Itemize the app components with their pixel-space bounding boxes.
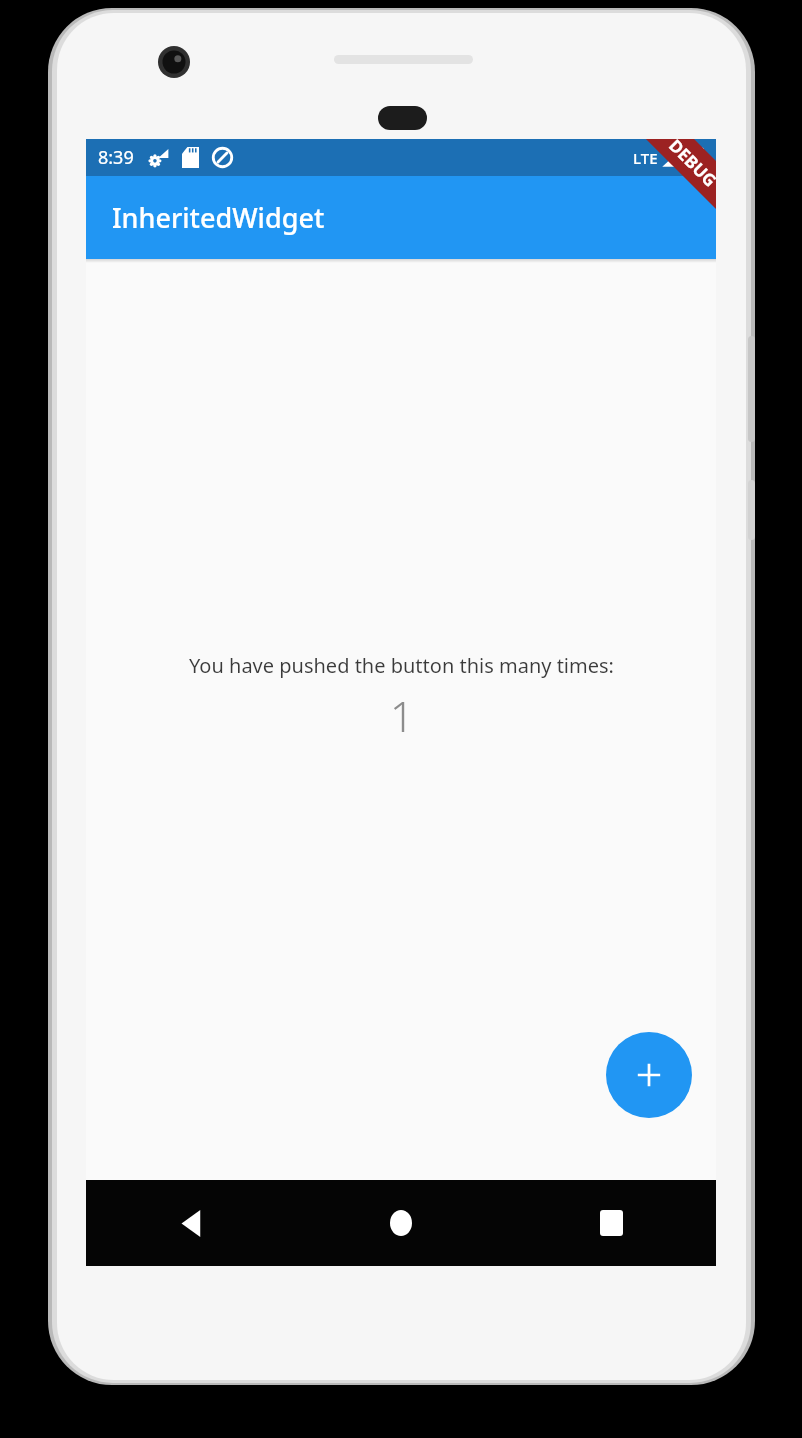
button[interactable]: Recents <box>506 1180 716 1266</box>
button[interactable]: Increment counter <box>606 1032 692 1118</box>
staticText: InheritedWidget <box>112 199 325 236</box>
button[interactable]: Home <box>296 1180 506 1266</box>
staticText: LTE <box>633 148 658 168</box>
staticText: 8:39 <box>98 145 134 170</box>
button[interactable]: Back <box>86 1180 296 1266</box>
staticText: DEBUG <box>664 139 716 192</box>
staticText: You have pushed the button this many tim… <box>189 652 614 679</box>
staticText: 1 <box>390 687 414 744</box>
